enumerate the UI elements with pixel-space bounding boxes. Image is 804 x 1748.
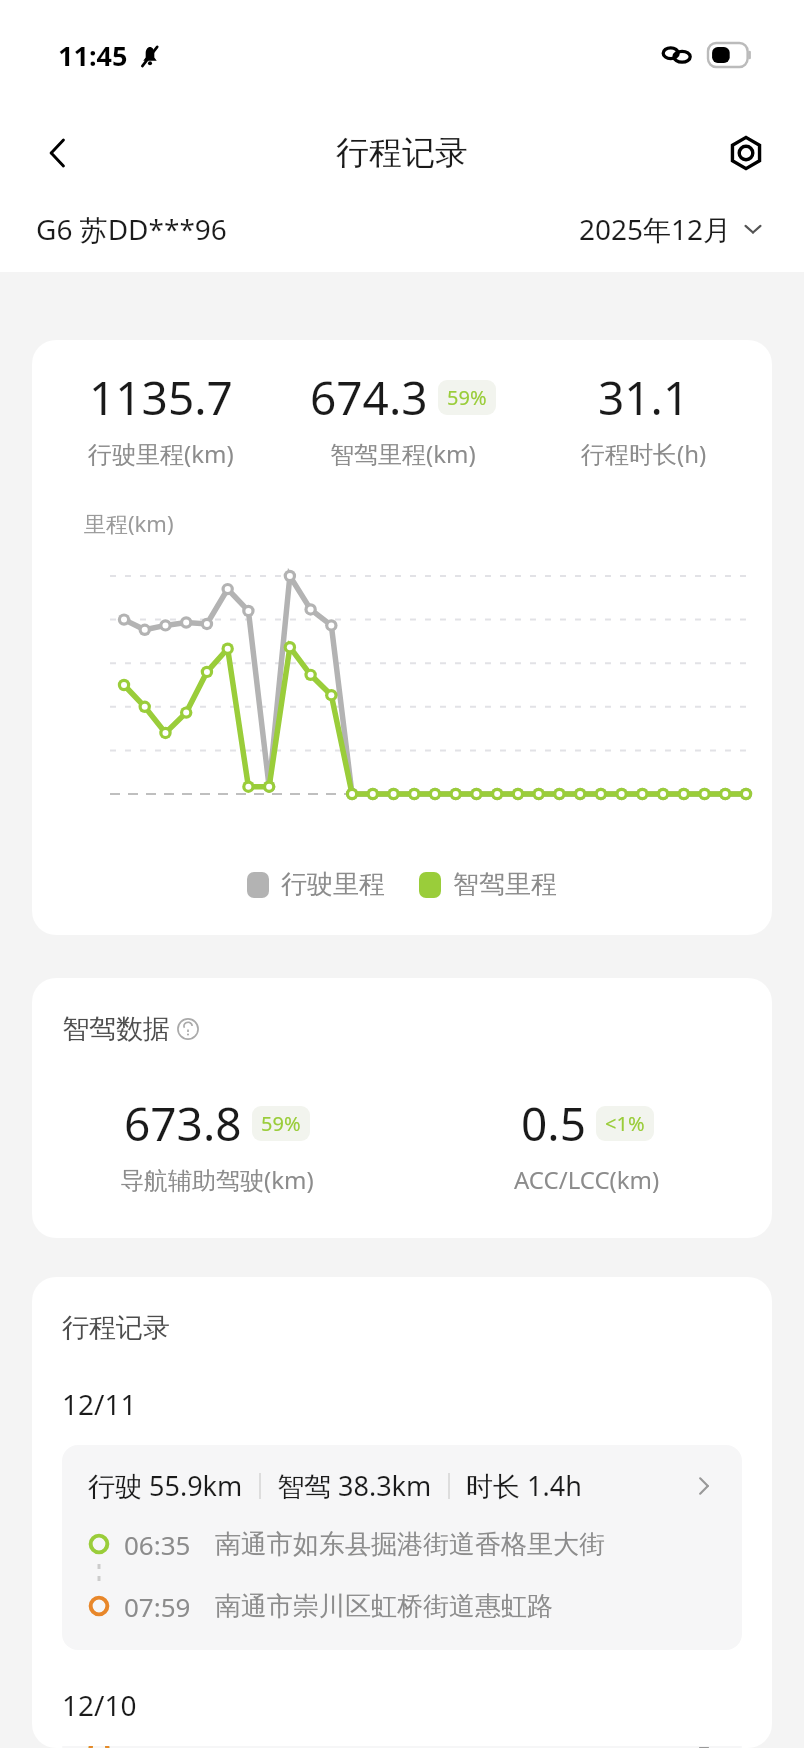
staticText: 11:45 bbox=[58, 37, 128, 74]
staticText: 南通市崇川区虹桥街道惠虹路 bbox=[215, 1590, 553, 1623]
button[interactable]: 0.5 bbox=[402, 1092, 772, 1196]
staticText: 行驶里程 bbox=[281, 868, 385, 901]
button[interactable]: 行驶 55.9km bbox=[62, 1445, 742, 1650]
button[interactable]: 1135.7 bbox=[40, 366, 282, 470]
staticText: 智驾里程(km) bbox=[330, 437, 476, 470]
staticText: 59% bbox=[447, 384, 487, 411]
staticText: 59% bbox=[261, 1110, 301, 1137]
button[interactable]: 行驶里程 bbox=[247, 868, 385, 901]
staticText: 674.3 bbox=[310, 366, 428, 429]
staticText: 智驾里程 bbox=[453, 868, 557, 901]
button[interactable]: 行驶 53.7km bbox=[62, 1746, 742, 1748]
staticText: 2025年12月 bbox=[579, 210, 732, 248]
button[interactable]: Back bbox=[28, 123, 88, 183]
staticText: 673.8 bbox=[124, 1092, 242, 1155]
staticText: 行程时长(h) bbox=[581, 437, 707, 470]
button[interactable]: Settings bbox=[716, 123, 776, 183]
staticText: ACC/LCC(km) bbox=[514, 1163, 660, 1196]
staticText: 12/10 bbox=[62, 1686, 137, 1724]
staticText: G6 苏DD***96 bbox=[36, 210, 227, 248]
staticText: 时长 1.4h bbox=[466, 1467, 582, 1504]
staticText: 行驶里程(km) bbox=[88, 437, 234, 470]
staticText: 南通市如东县掘港街道香格里大街 bbox=[215, 1528, 605, 1561]
button[interactable]: G6 苏DD***96 bbox=[36, 210, 227, 248]
staticText: 行驶 55.9km bbox=[88, 1467, 243, 1504]
staticText: 0.5 bbox=[521, 1092, 586, 1155]
button[interactable]: 智驾里程 bbox=[419, 868, 557, 901]
staticText: <1% bbox=[605, 1110, 645, 1137]
staticText: 行程记录 bbox=[336, 132, 468, 174]
staticText: 31.1 bbox=[598, 366, 690, 429]
staticText: 里程(km) bbox=[84, 508, 174, 538]
staticText: 06:35 bbox=[124, 1527, 191, 1562]
button[interactable]: 673.8 bbox=[32, 1092, 402, 1196]
staticText: 智驾 38.3km bbox=[277, 1467, 432, 1504]
staticText: 导航辅助驾驶(km) bbox=[120, 1163, 314, 1196]
button[interactable]: 674.3 bbox=[282, 366, 523, 470]
staticText: 1135.7 bbox=[89, 366, 233, 429]
staticText: 行程记录 bbox=[62, 1311, 170, 1345]
staticText: 智驾数据 bbox=[62, 1012, 170, 1046]
button[interactable]: 2025年12月 bbox=[575, 206, 768, 252]
button[interactable]: 31.1 bbox=[523, 366, 764, 470]
staticText: 07:59 bbox=[124, 1589, 191, 1624]
button[interactable]: 智驾数据 bbox=[62, 1012, 200, 1046]
staticText: 12/11 bbox=[62, 1385, 137, 1423]
